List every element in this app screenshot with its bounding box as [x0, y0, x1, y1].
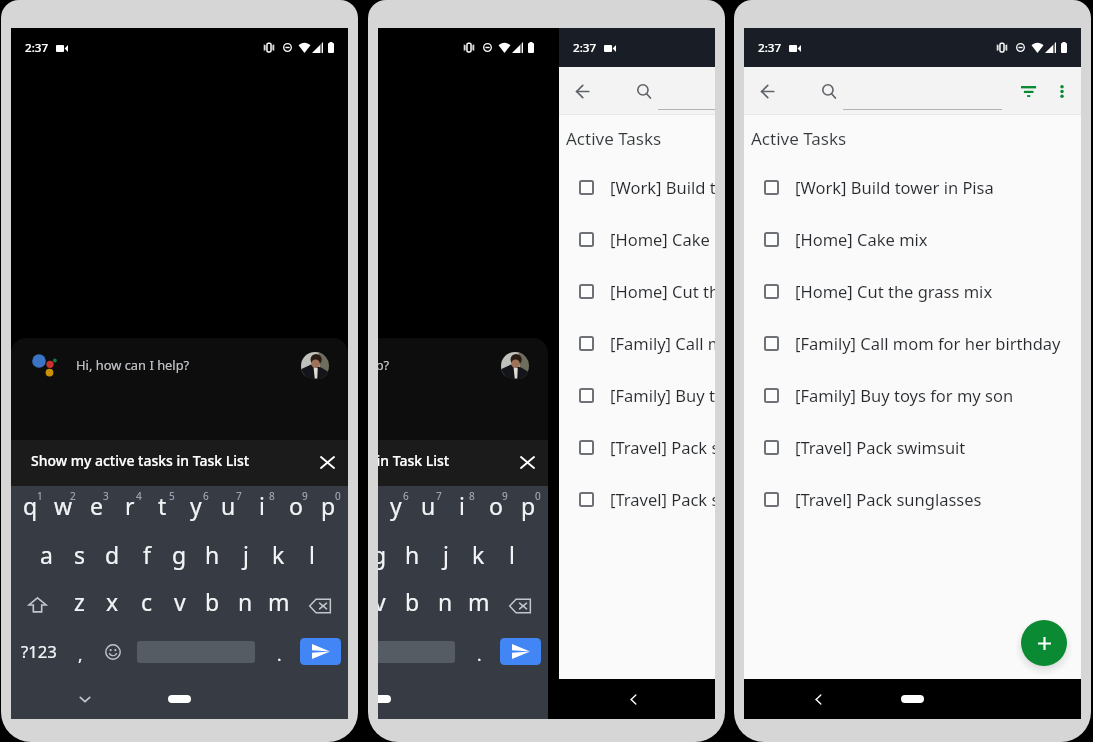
button[interactable]: k: [462, 539, 495, 572]
button[interactable]: [Home] Cut the grass mix: [744, 265, 1081, 317]
button[interactable]: b: [196, 586, 229, 619]
button[interactable]: v: [378, 586, 396, 619]
button[interactable]: [Family] Call mom for her birthday: [559, 317, 715, 369]
staticText: g: [378, 539, 387, 570]
button[interactable]: [Family] Call mom for her birthday: [744, 317, 1081, 369]
button[interactable]: [Travel] Pack swimsuit: [559, 421, 715, 473]
staticText: c: [141, 586, 153, 617]
button[interactable]: Home: [901, 695, 924, 703]
button[interactable]: [Travel] Pack swimsuit: [744, 421, 1081, 473]
button[interactable]: x: [96, 586, 129, 619]
button[interactable]: ,: [70, 641, 90, 667]
staticText: h: [405, 539, 420, 570]
button[interactable]: Emoji: [105, 644, 121, 660]
button[interactable]: Shift: [28, 596, 47, 614]
button[interactable]: [Travel] Pack sunglasses: [744, 473, 1081, 525]
button[interactable]: Show my active tasks in Task List: [11, 440, 348, 486]
button[interactable]: [Work] Build tower in Pisa: [559, 161, 715, 213]
button[interactable]: e: [80, 490, 113, 523]
button[interactable]: p: [512, 490, 545, 523]
button[interactable]: u: [412, 490, 445, 523]
button[interactable]: Send: [300, 638, 341, 665]
button[interactable]: Backspace: [309, 598, 331, 615]
button[interactable]: i: [245, 490, 278, 523]
staticText: 2: [70, 489, 76, 503]
button[interactable]: Show my active tasks in Task List: [378, 440, 548, 486]
button[interactable]: p: [312, 490, 345, 523]
button[interactable]: [Family] Buy toys for my son: [744, 369, 1081, 421]
button[interactable]: j: [229, 539, 262, 572]
button[interactable]: Filter: [1014, 77, 1042, 105]
button[interactable]: g: [163, 539, 196, 572]
button[interactable]: k: [262, 539, 295, 572]
staticText: 8: [469, 489, 475, 503]
button[interactable]: [Home] Cake mix: [559, 213, 715, 265]
button[interactable]: a: [30, 539, 63, 572]
button[interactable]: l: [295, 539, 328, 572]
button[interactable]: m: [262, 586, 295, 619]
button[interactable]: y: [179, 490, 212, 523]
staticText: n: [438, 586, 453, 617]
staticText: l: [309, 539, 315, 570]
button[interactable]: n: [229, 586, 262, 619]
staticText: u: [421, 490, 436, 521]
staticText: [Travel] Pack swimsuit: [795, 436, 966, 458]
button[interactable]: w: [47, 490, 80, 523]
staticText: v: [378, 586, 386, 617]
button[interactable]: q: [14, 490, 47, 523]
button[interactable]: j: [429, 539, 462, 572]
button[interactable]: o: [479, 490, 512, 523]
button[interactable]: .: [469, 641, 489, 667]
button[interactable]: Add task: [1021, 620, 1067, 666]
staticText: 3: [103, 489, 109, 503]
button[interactable]: z: [63, 586, 96, 619]
button[interactable]: Search: [815, 77, 843, 105]
button[interactable]: v: [163, 586, 196, 619]
button[interactable]: f: [130, 539, 163, 572]
button[interactable]: t: [146, 490, 179, 523]
staticText: m: [268, 586, 290, 617]
staticText: r: [125, 490, 135, 521]
button[interactable]: h: [396, 539, 429, 572]
button[interactable]: Close: [514, 449, 540, 475]
button[interactable]: [Home] Cake mix: [744, 213, 1081, 265]
button[interactable]: s: [63, 539, 96, 572]
button[interactable]: Back: [568, 77, 596, 105]
button[interactable]: o: [279, 490, 312, 523]
button[interactable]: Back: [753, 77, 781, 105]
button[interactable]: [Home] Cut the grass mix: [559, 265, 715, 317]
button[interactable]: y: [379, 490, 412, 523]
button[interactable]: More options: [1048, 77, 1076, 105]
button[interactable]: u: [212, 490, 245, 523]
button[interactable]: i: [445, 490, 478, 523]
button[interactable]: Back: [620, 686, 646, 712]
staticText: p: [521, 490, 536, 521]
button[interactable]: Send: [500, 638, 541, 665]
button[interactable]: d: [96, 539, 129, 572]
button[interactable]: Close: [314, 449, 340, 475]
staticText: Hi, how can I help?: [76, 356, 190, 374]
button[interactable]: g: [378, 539, 396, 572]
button[interactable]: b: [396, 586, 429, 619]
button[interactable]: r: [113, 490, 146, 523]
button[interactable]: n: [429, 586, 462, 619]
button[interactable]: l: [495, 539, 528, 572]
button[interactable]: Search: [630, 77, 658, 105]
button[interactable]: [Family] Buy toys for my son: [559, 369, 715, 421]
button[interactable]: Backspace: [509, 598, 531, 615]
button[interactable]: [Travel] Pack sunglasses: [559, 473, 715, 525]
button[interactable]: [Work] Build tower in Pisa: [744, 161, 1081, 213]
button[interactable]: Hide keyboard: [73, 687, 97, 711]
button[interactable]: Back: [805, 686, 831, 712]
button[interactable]: Home: [168, 695, 191, 703]
button[interactable]: ?123: [18, 638, 60, 664]
button[interactable]: .: [269, 641, 289, 667]
button[interactable]: m: [462, 586, 495, 619]
button[interactable]: c: [130, 586, 163, 619]
staticText: [Family] Buy toys for my son: [795, 384, 1014, 406]
button[interactable]: h: [196, 539, 229, 572]
button[interactable]: Home: [378, 695, 391, 703]
